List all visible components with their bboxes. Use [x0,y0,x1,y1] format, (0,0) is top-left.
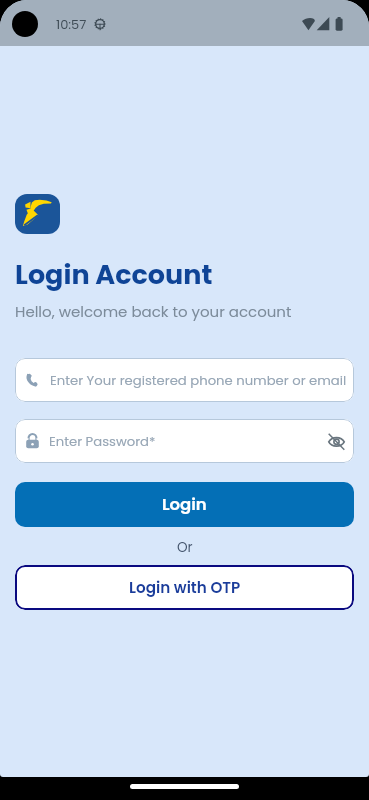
staticText: Enter Password* [49,432,156,450]
button[interactable]: Show password [325,430,347,452]
staticText: Enter Your registered phone number or em… [50,371,347,389]
staticText: Or [177,538,193,557]
staticText: Login with OTP [129,577,241,598]
button[interactable]: Login [15,482,354,527]
staticText: Hello, welcome back to your account [15,301,292,322]
button[interactable]: Login with OTP [15,565,354,610]
button[interactable]: Enter Password* [15,419,354,463]
staticText: Login [162,493,207,516]
staticText: 10:57 [56,15,87,33]
staticText: Login Account [15,256,213,294]
button[interactable]: Enter Your registered phone number or em… [15,358,354,402]
